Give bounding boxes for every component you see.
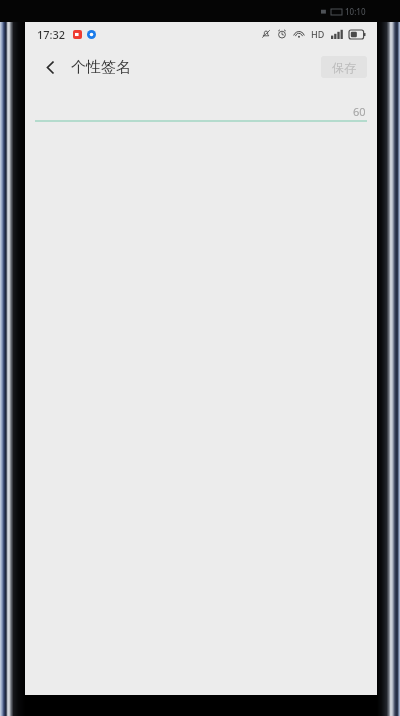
button[interactable]: Back	[35, 52, 65, 82]
staticText: 17:32	[37, 27, 66, 42]
staticText: 个性签名	[71, 58, 131, 77]
staticText: 60	[353, 104, 366, 119]
staticText: HD	[311, 28, 325, 40]
staticText: 保存	[332, 60, 356, 75]
staticText: 10:10	[345, 6, 366, 17]
button[interactable]: 保存	[321, 56, 367, 78]
